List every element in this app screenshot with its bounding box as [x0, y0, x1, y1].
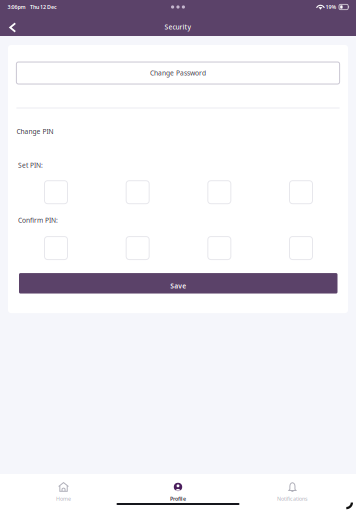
button[interactable]: PIN digit: [289, 237, 312, 260]
button[interactable]: PIN digit: [126, 181, 149, 204]
button[interactable]: PIN digit: [126, 237, 149, 260]
staticText: 3:06pm: [7, 3, 25, 11]
staticText: Notifications: [277, 495, 308, 502]
staticText: Save: [170, 281, 186, 290]
button[interactable]: PIN digit: [289, 181, 312, 204]
staticText: Home: [56, 495, 71, 502]
button[interactable]: PIN digit: [208, 181, 231, 204]
button[interactable]: Save: [19, 273, 337, 294]
staticText: Profile: [170, 495, 186, 502]
button[interactable]: Back: [0, 15, 24, 35]
staticText: Change Password: [150, 69, 206, 77]
button[interactable]: Change Password: [16, 62, 340, 84]
staticText: 19%: [325, 3, 336, 11]
staticText: Security: [164, 23, 191, 31]
staticText: Thu 12 Dec: [30, 3, 57, 11]
staticText: Change PIN: [16, 127, 53, 136]
staticText: Confirm PIN:: [18, 216, 58, 225]
button[interactable]: PIN digit: [208, 237, 231, 260]
button[interactable]: Home: [6, 474, 121, 512]
staticText: Set PIN:: [18, 161, 43, 170]
button[interactable]: PIN digit: [44, 237, 67, 260]
button[interactable]: PIN digit: [44, 181, 67, 204]
button[interactable]: Profile: [121, 474, 235, 512]
button[interactable]: Notifications: [235, 474, 350, 512]
